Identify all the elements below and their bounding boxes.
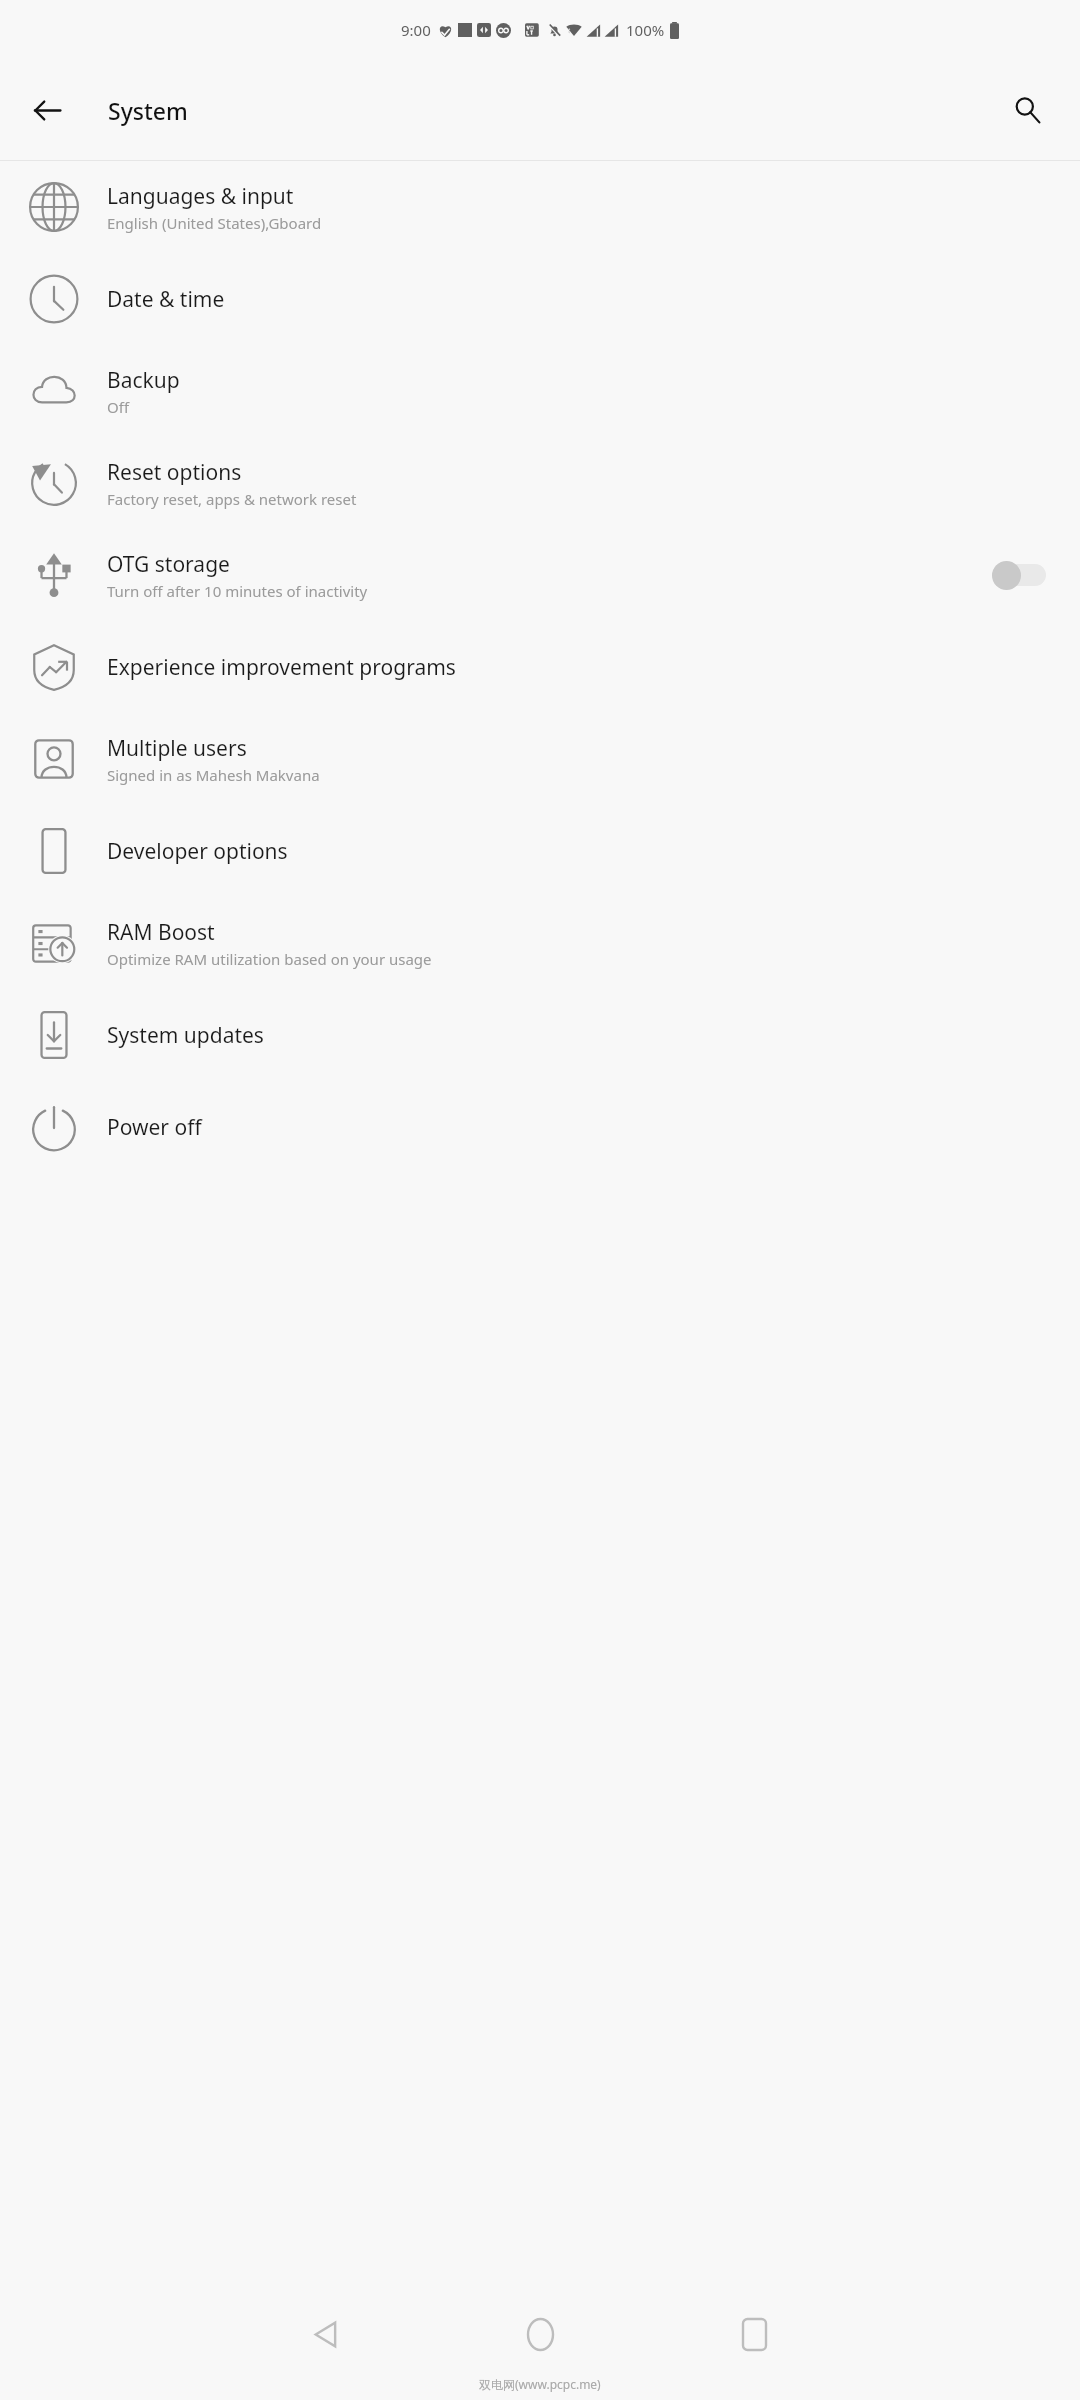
staticText: System updates [107,1021,264,1050]
button[interactable]: Recents [722,2302,786,2366]
button[interactable]: Experience improvement programs [0,621,1080,713]
button[interactable]: OTG storage [0,529,1080,621]
staticText: Turn off after 10 minutes of inactivity [107,581,368,601]
staticText: OTG storage [107,550,230,579]
staticText: Reset options [107,458,242,487]
staticText: Developer options [107,837,288,866]
button[interactable]: Developer options [0,805,1080,897]
staticText: 9:00 [401,20,431,40]
button[interactable]: Back [16,79,78,141]
button[interactable]: RAM Boost [0,897,1080,989]
button[interactable]: Date & time [0,253,1080,345]
staticText: English (United States),Gboard [107,213,322,233]
button[interactable]: Power off [0,1081,1080,1173]
button[interactable]: Reset options [0,437,1080,529]
staticText: Off [107,397,130,417]
staticText: Power off [107,1113,202,1142]
button[interactable]: Back [294,2302,358,2366]
staticText: Experience improvement programs [107,653,456,682]
staticText: Factory reset, apps & network reset [107,489,357,509]
staticText: Optimize RAM utilization based on your u… [107,949,432,969]
button[interactable]: Home [508,2302,572,2366]
staticText: Multiple users [107,734,247,763]
button[interactable]: OTG storage toggle [992,558,1048,592]
button[interactable]: Multiple users [0,713,1080,805]
staticText: Date & time [107,285,225,314]
button[interactable]: System updates [0,989,1080,1081]
button[interactable]: Search [996,79,1058,141]
staticText: Backup [107,366,180,395]
staticText: RAM Boost [107,918,215,947]
staticText: Languages & input [107,182,294,211]
staticText: Signed in as Mahesh Makvana [107,765,320,785]
staticText: 双电网(www.pcpc.me) [479,2376,601,2392]
staticText: System [108,95,188,126]
button[interactable]: Backup [0,345,1080,437]
button[interactable]: Languages & input [0,161,1080,253]
staticText: 100% [626,20,665,40]
